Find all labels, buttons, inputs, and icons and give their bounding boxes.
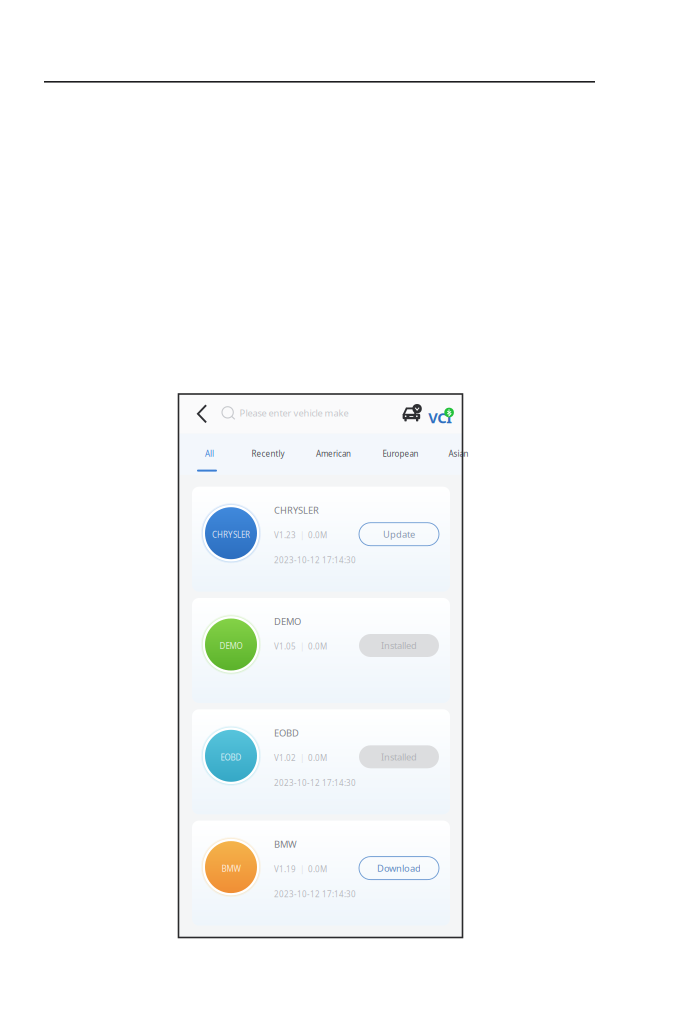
staticText: Download [377, 862, 421, 874]
staticText: Please enter vehicle make [239, 407, 348, 419]
staticText: CHRYSLER [212, 529, 250, 540]
staticText: | [296, 864, 308, 874]
staticText: 0.0M [308, 864, 327, 874]
staticText: 2023-10-12 17:14:30 [274, 889, 356, 899]
button[interactable]: DEMO [192, 598, 450, 703]
staticText: 0.0M [308, 530, 327, 540]
staticText: BMW [221, 863, 240, 874]
button[interactable]: VCI Bluetooth [428, 404, 458, 426]
staticText: BMW [274, 838, 297, 850]
button[interactable]: Download [359, 857, 439, 880]
staticText: VCI [428, 408, 452, 427]
button[interactable]: Recently [246, 434, 290, 474]
button[interactable]: Back [189, 401, 215, 427]
staticText: DEMO [274, 615, 301, 628]
button[interactable]: Installed [359, 634, 439, 657]
staticText: 0.0M [308, 752, 327, 763]
button[interactable]: VCI device [402, 404, 422, 422]
staticText: Installed [381, 639, 417, 652]
button[interactable]: European [378, 434, 422, 474]
staticText: Update [383, 528, 415, 540]
staticText: DEMO [219, 641, 242, 651]
button[interactable]: American [311, 434, 355, 474]
staticText: All [205, 448, 214, 459]
staticText: European [382, 448, 418, 459]
button[interactable]: All [187, 434, 231, 474]
staticText: 0.0M [308, 641, 327, 652]
staticText: Asian [448, 448, 468, 459]
staticText: | [296, 530, 308, 540]
button[interactable]: Asian [436, 434, 480, 474]
staticText: Installed [381, 751, 417, 763]
staticText: American [316, 448, 351, 459]
staticText: EOBD [274, 727, 299, 739]
staticText: V1.19 [274, 864, 296, 874]
staticText: V1.05 [274, 641, 296, 652]
staticText: EOBD [220, 752, 241, 763]
button[interactable]: CHRYSLER [192, 487, 450, 592]
staticText: V1.02 [274, 752, 296, 763]
button[interactable]: Update [359, 523, 439, 546]
staticText: 2023-10-12 17:14:30 [274, 555, 356, 565]
button[interactable]: Installed [359, 745, 439, 768]
staticText: Recently [251, 448, 284, 459]
button[interactable]: BMW [192, 821, 450, 926]
staticText: V1.23 [274, 530, 296, 540]
button[interactable]: EOBD [192, 709, 450, 814]
staticText: | [296, 752, 308, 763]
staticText: 2023-10-12 17:14:30 [274, 777, 356, 788]
staticText: | [296, 641, 308, 652]
staticText: CHRYSLER [274, 504, 319, 516]
